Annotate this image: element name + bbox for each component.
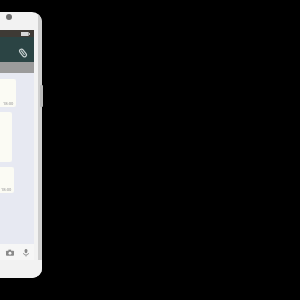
button[interactable]: Attach <box>17 47 29 59</box>
button[interactable]: Camera <box>4 247 15 258</box>
button[interactable]: 18:00 <box>0 79 16 107</box>
button[interactable]: Attach <box>0 37 34 62</box>
button[interactable]: Voice message <box>20 247 31 258</box>
staticText: 18:00 <box>3 101 14 106</box>
staticText: 18:00 <box>1 187 12 192</box>
button[interactable]: x 16 <box>0 167 14 193</box>
